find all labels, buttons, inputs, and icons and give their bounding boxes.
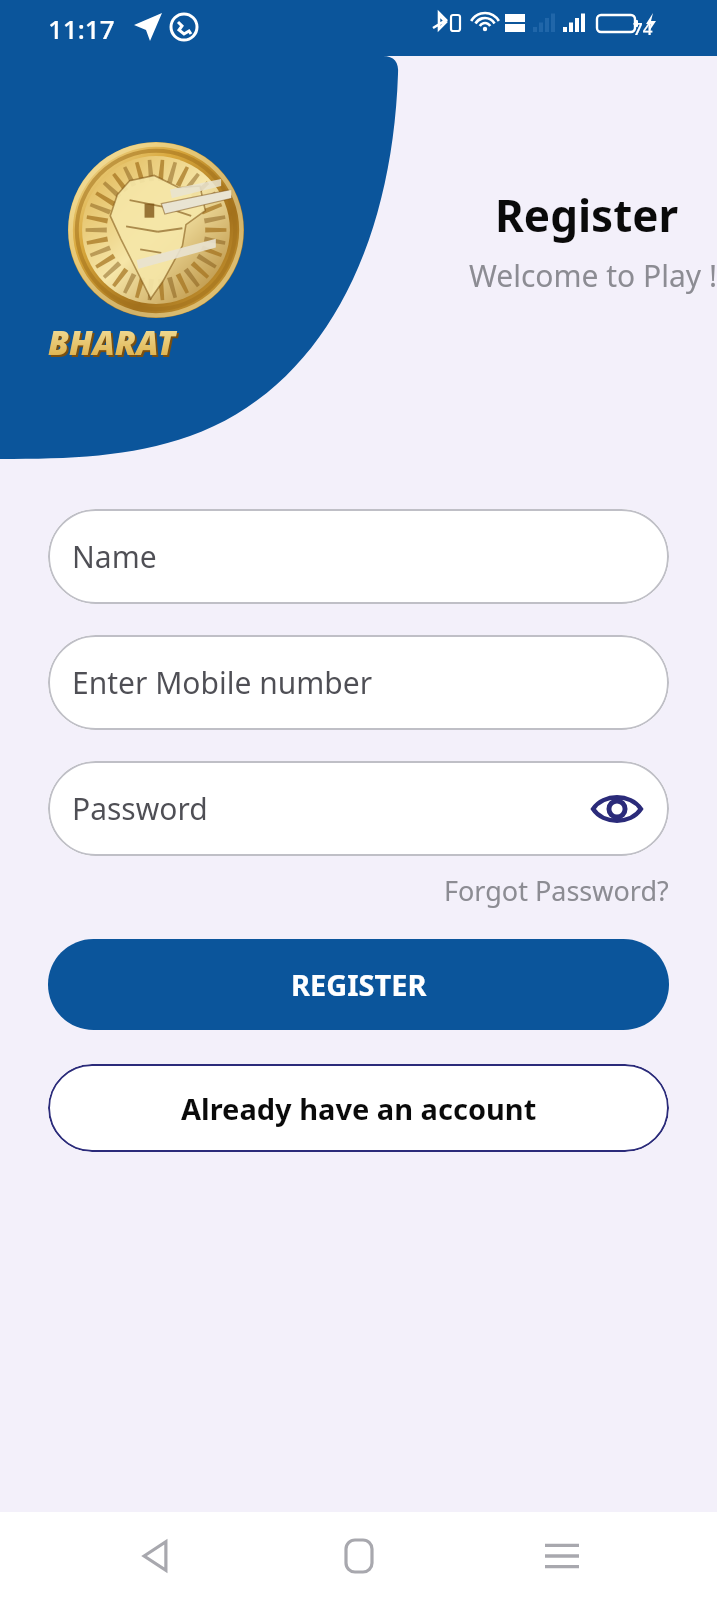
staticText: Register [495,185,679,245]
staticText: Password [72,788,208,829]
staticText: BHARAT MATKA [48,320,264,358]
staticText: Welcome to Play ! [469,255,717,296]
staticText: REGISTER [291,965,427,1004]
button[interactable]: Show password [587,779,647,839]
button[interactable]: Name [48,509,669,604]
button[interactable]: Password [48,761,669,856]
button[interactable]: Recent apps [514,1512,610,1600]
staticText: Already have an account [181,1089,537,1128]
button[interactable]: Forgot Password? [48,872,669,909]
button[interactable]: Already have an account [48,1064,669,1152]
button[interactable]: Enter Mobile number [48,635,669,730]
staticText: Forgot Password? [444,872,669,909]
staticText: Name [72,536,157,577]
button[interactable]: Home [311,1512,407,1600]
button[interactable]: REGISTER [48,939,669,1030]
staticText: Enter Mobile number [72,662,373,703]
staticText: 74 [633,17,653,40]
staticText: 11:17 [48,11,115,46]
staticText: BHARAT MATKA [50,322,266,360]
button[interactable]: Back [107,1512,203,1600]
